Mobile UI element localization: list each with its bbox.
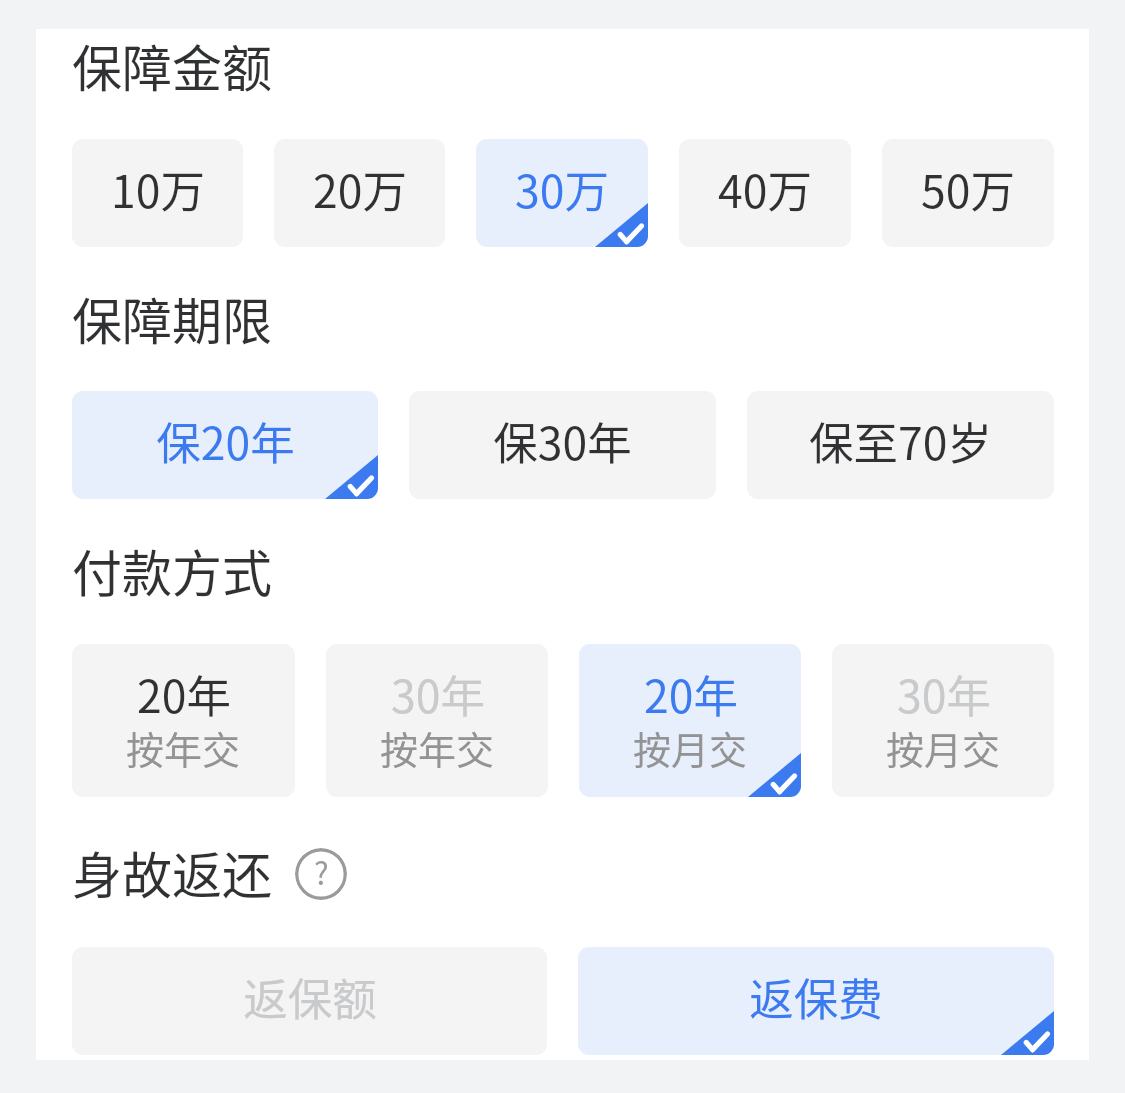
staticText: ? xyxy=(314,849,329,894)
button[interactable]: 30年 xyxy=(326,644,548,797)
staticText: 30年 xyxy=(391,661,485,725)
button[interactable]: 保至70岁 xyxy=(747,391,1054,499)
staticText: 保至70岁 xyxy=(809,408,992,472)
button[interactable]: 40万 xyxy=(679,139,851,247)
staticText: 按年交 xyxy=(380,720,495,775)
button[interactable]: 返保费 xyxy=(578,947,1054,1055)
staticText: 30万 xyxy=(515,156,609,220)
staticText: 保20年 xyxy=(156,408,295,472)
staticText: 保障金额 xyxy=(72,29,272,99)
staticText: 按年交 xyxy=(126,720,241,775)
staticText: 20万 xyxy=(313,156,407,220)
button[interactable]: Help – what is 身故返还? xyxy=(295,848,347,900)
button[interactable]: 保20年 xyxy=(72,391,378,499)
staticText: 返保额 xyxy=(243,964,377,1028)
staticText: 付款方式 xyxy=(72,534,272,604)
staticText: 40万 xyxy=(718,156,812,220)
staticText: 20年 xyxy=(644,661,738,725)
button[interactable]: 返保额 xyxy=(72,947,547,1055)
staticText: 返保费 xyxy=(749,964,883,1028)
button[interactable]: 保30年 xyxy=(409,391,716,499)
staticText: 保障期限 xyxy=(72,282,272,352)
button[interactable]: 30万 xyxy=(476,139,648,247)
staticText: 按月交 xyxy=(633,720,748,775)
staticText: 20年 xyxy=(137,661,231,725)
button[interactable]: 10万 xyxy=(72,139,243,247)
staticText: 按月交 xyxy=(886,720,1001,775)
button[interactable]: 20年 xyxy=(579,644,801,797)
staticText: 10万 xyxy=(111,156,205,220)
button[interactable]: 30年 xyxy=(832,644,1054,797)
staticText: 保30年 xyxy=(493,408,632,472)
staticText: 50万 xyxy=(921,156,1015,220)
staticText: 30年 xyxy=(897,661,991,725)
button[interactable]: 20年 xyxy=(72,644,295,797)
staticText: 身故返还 xyxy=(72,836,272,906)
button[interactable]: 20万 xyxy=(274,139,445,247)
button[interactable]: 50万 xyxy=(882,139,1054,247)
